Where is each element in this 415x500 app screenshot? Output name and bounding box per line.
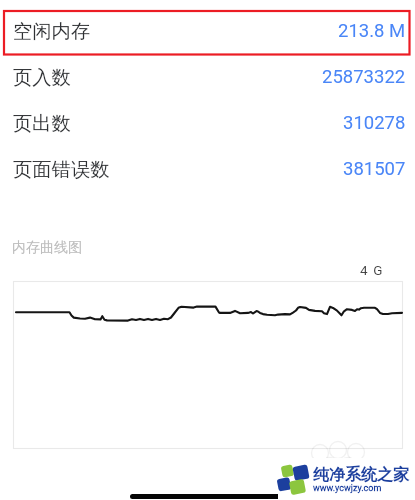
staticText: 4 G (360, 262, 384, 278)
staticText: 310278 (343, 112, 406, 134)
button[interactable]: 空闲内存 (0, 9, 415, 53)
button[interactable]: 页面错误数 (0, 147, 415, 191)
button[interactable]: 页入数 (0, 55, 415, 99)
staticText: www.ycwjzy.com (313, 483, 382, 494)
button[interactable]: 页出数 (0, 101, 415, 145)
staticText: 页出数 (13, 111, 71, 135)
staticText: 内存曲线图 (12, 239, 82, 257)
staticText: 213.8 M (338, 20, 406, 42)
staticText: 页面错误数 (13, 157, 110, 181)
staticText: 25873322 (322, 66, 406, 88)
staticText: 空闲内存 (13, 19, 91, 43)
staticText: 页入数 (13, 65, 71, 89)
staticText: 纯净系统之家 (313, 465, 409, 485)
staticText: 381507 (343, 158, 406, 180)
